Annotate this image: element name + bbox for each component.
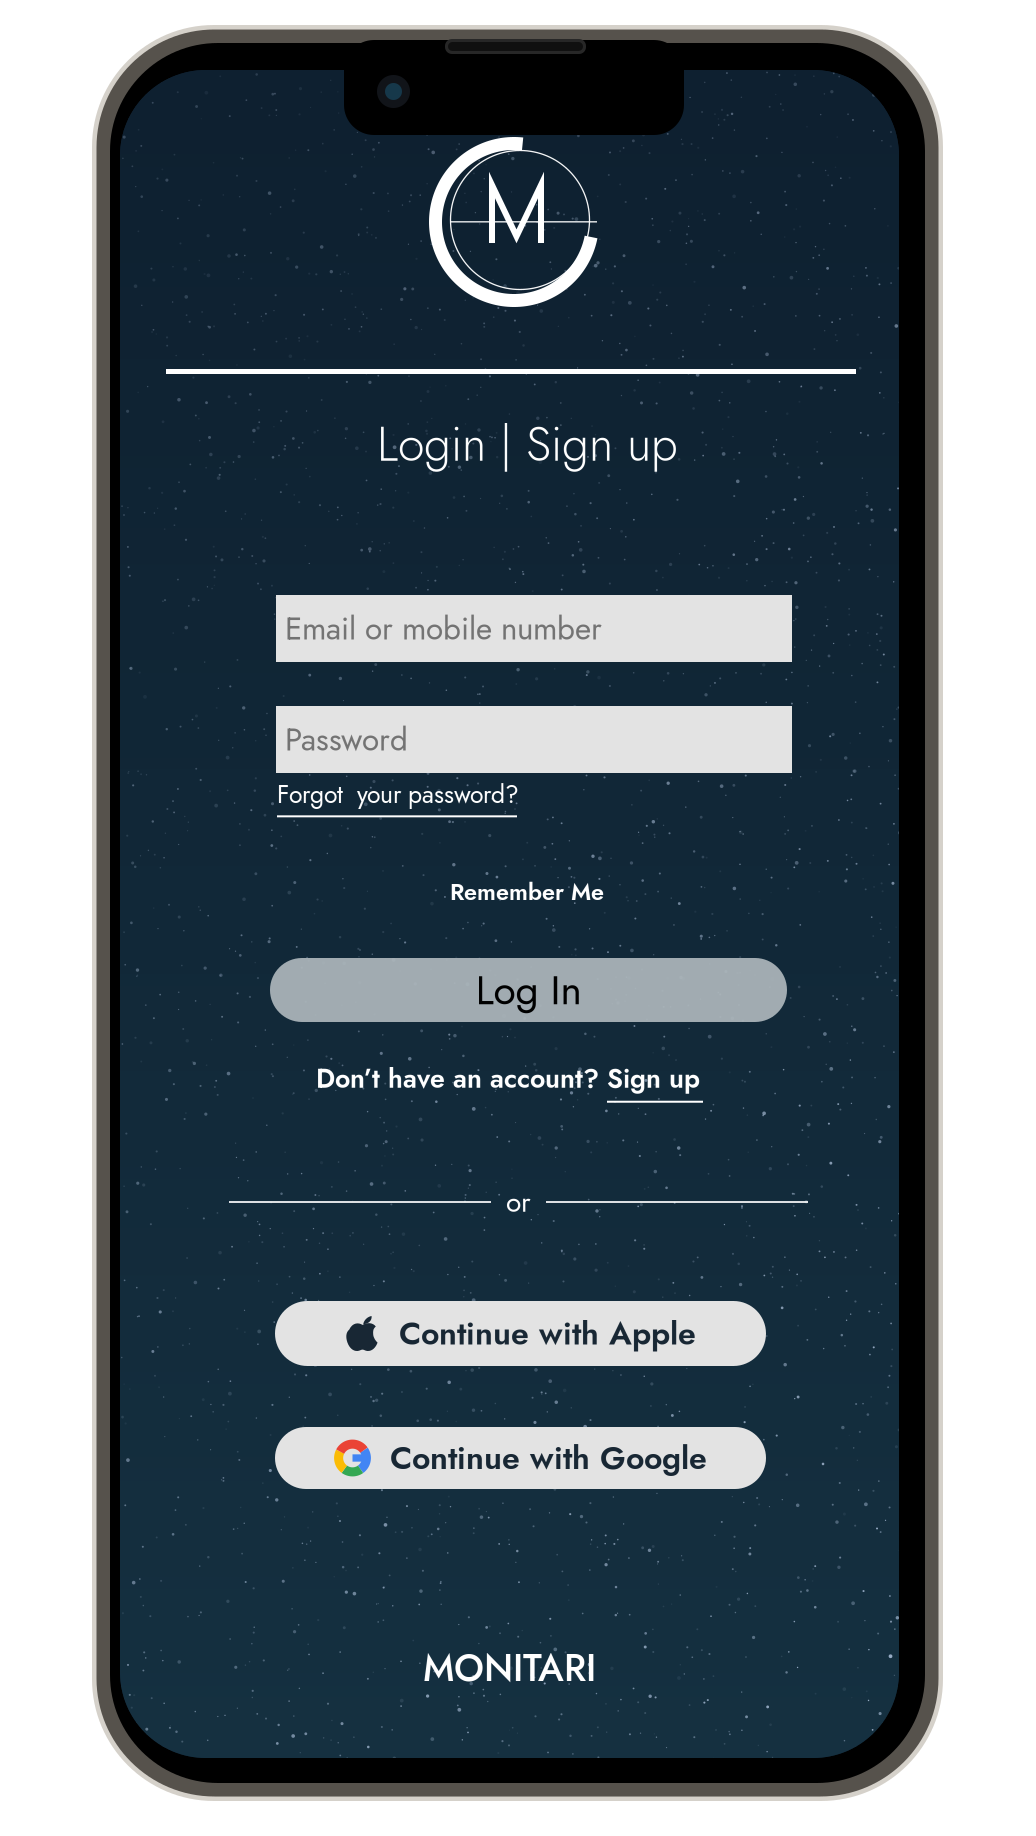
button[interactable]: Email or mobile number [276,595,792,662]
staticText: Don’t have an account? [316,1059,607,1098]
staticText: Log In [475,961,581,1019]
button[interactable]: Continue with Apple [275,1301,766,1366]
button[interactable]: Log In [270,958,787,1022]
staticText: Continue with Google [390,1435,707,1481]
button[interactable]: Continue with Google [275,1427,766,1489]
staticText: Login | Sign up [377,409,678,479]
staticText: Sign up [607,1059,700,1098]
button[interactable]: Remember Me [277,875,777,909]
button[interactable]: Don’t have an account? [120,1061,899,1101]
staticText: or [506,1182,531,1222]
staticText: Password [285,717,408,762]
button[interactable]: Login | Sign up [138,413,917,475]
staticText: MONITARI [423,1641,596,1695]
staticText: Continue with Apple [399,1310,696,1357]
staticText: Email or mobile number [285,606,602,651]
staticText: Remember Me [450,875,604,909]
button[interactable]: Forgot your password? [277,780,537,814]
button[interactable]: Password [276,706,792,773]
staticText: Forgot your password? [277,777,519,812]
